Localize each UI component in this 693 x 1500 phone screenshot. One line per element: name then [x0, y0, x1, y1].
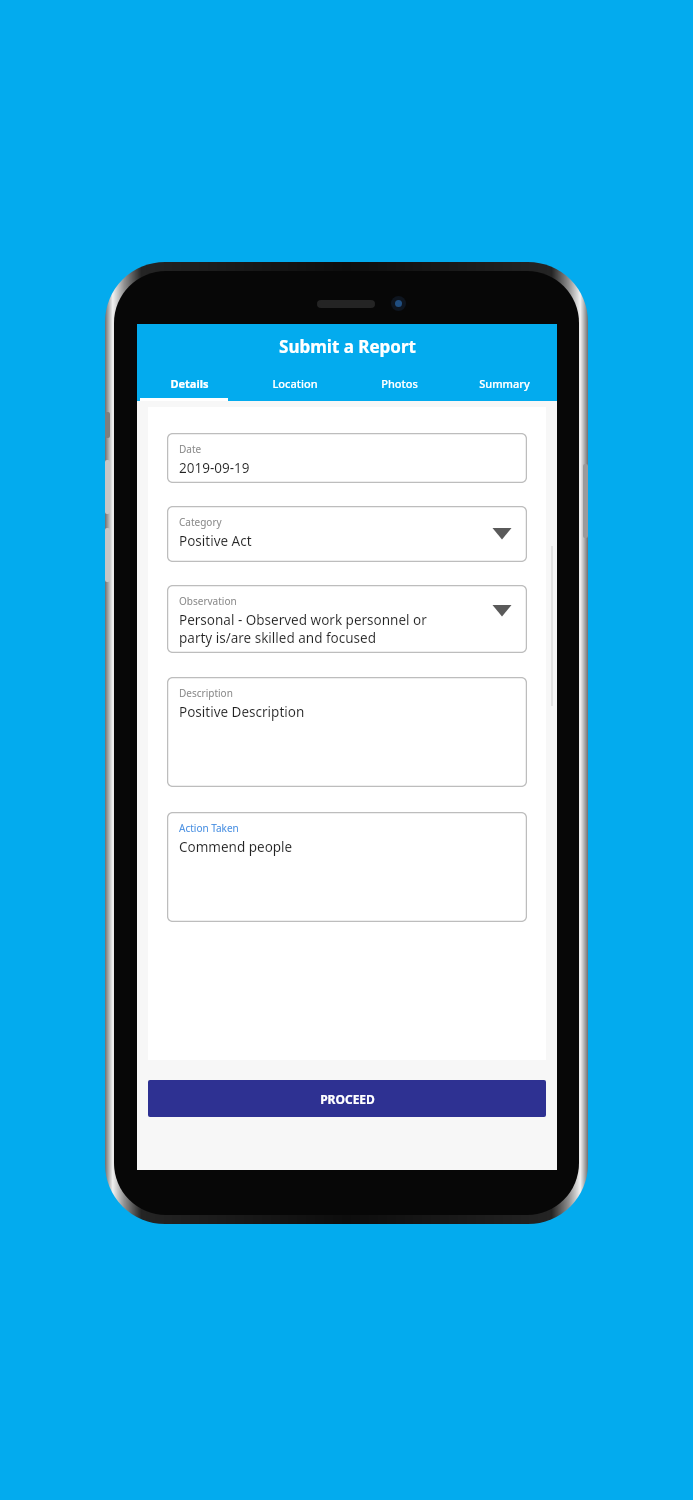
- other: Open dropdown: [167, 528, 527, 540]
- button[interactable]: Observation: [167, 585, 527, 653]
- staticText: PROCEED: [320, 1091, 375, 1107]
- staticText: Description: [179, 686, 233, 700]
- staticText: Details: [170, 376, 209, 391]
- button[interactable]: PROCEED: [148, 1080, 546, 1117]
- staticText: Action Taken: [179, 821, 239, 835]
- staticText: Submit a Report: [279, 335, 416, 358]
- staticText: Location: [272, 376, 318, 391]
- staticText: Summary: [479, 376, 530, 391]
- button[interactable]: Details: [137, 369, 242, 398]
- staticText: 2019-09-19: [179, 459, 250, 477]
- button[interactable]: Category: [167, 506, 527, 562]
- staticText: party is/are skilled and focused: [179, 629, 376, 647]
- button[interactable]: Photos: [347, 369, 452, 398]
- staticText: Category: [179, 515, 222, 529]
- button[interactable]: Description: [167, 677, 527, 787]
- staticText: Photos: [381, 376, 418, 391]
- button[interactable]: Action Taken: [167, 812, 527, 922]
- staticText: Positive Act: [179, 532, 252, 550]
- button[interactable]: Summary: [452, 369, 557, 398]
- staticText: Date: [179, 442, 202, 456]
- other: Open dropdown: [167, 605, 527, 617]
- staticText: Observation: [179, 594, 237, 608]
- button[interactable]: Date: [167, 433, 527, 483]
- staticText: Personal - Observed work personnel or: [179, 611, 427, 629]
- staticText: Commend people: [179, 838, 293, 856]
- button[interactable]: Location: [242, 369, 347, 398]
- staticText: Positive Description: [179, 703, 305, 721]
